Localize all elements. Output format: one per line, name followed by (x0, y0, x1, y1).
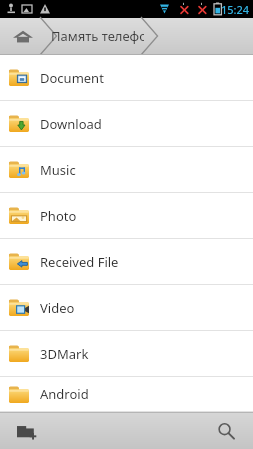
staticText: 15:24 (221, 2, 250, 17)
button[interactable]: Video (0, 285, 253, 331)
staticText: Video (40, 299, 75, 317)
staticText: Photo (40, 207, 77, 225)
button[interactable]: Download (0, 101, 253, 147)
button[interactable]: Android (0, 377, 253, 412)
staticText: Music (40, 161, 76, 179)
button[interactable]: Received File (0, 239, 253, 285)
button[interactable]: New folder (0, 413, 54, 449)
button[interactable]: Music (0, 147, 253, 193)
button[interactable]: Photo (0, 193, 253, 239)
staticText: Память телефона (51, 27, 144, 45)
staticText: Document (40, 69, 104, 87)
staticText: Received File (40, 253, 119, 271)
staticText: Android (40, 385, 89, 403)
button[interactable]: 3DMark (0, 331, 253, 377)
staticText: Download (40, 115, 102, 133)
button[interactable]: Search (199, 413, 253, 449)
button[interactable]: Home (0, 18, 46, 54)
button[interactable]: Память телефона (51, 18, 144, 54)
button[interactable]: Document (0, 55, 253, 101)
staticText: 3DMark (40, 345, 89, 363)
